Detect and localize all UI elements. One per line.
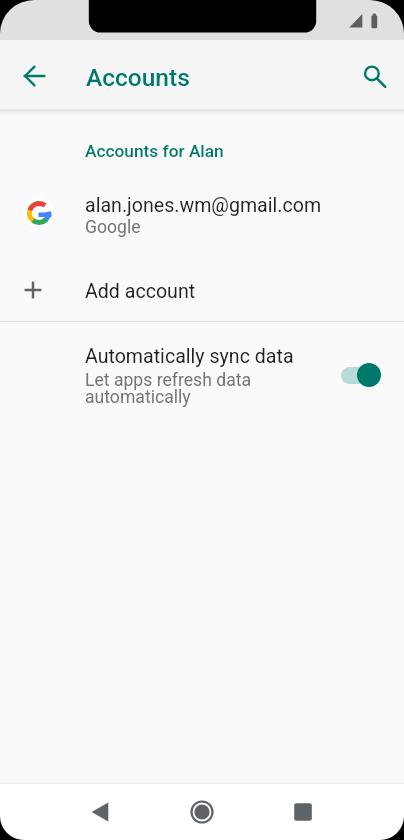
- staticText: Automatically sync data: [85, 345, 294, 368]
- button[interactable]: Navigate up: [10, 40, 58, 111]
- button[interactable]: Automatically sync data: [0, 322, 404, 418]
- button[interactable]: Home: [180, 783, 224, 840]
- staticText: Accounts for Alan: [85, 141, 224, 161]
- button[interactable]: Add account: [0, 264, 404, 321]
- button[interactable]: Search: [351, 40, 399, 111]
- staticText: Accounts: [86, 63, 190, 92]
- staticText: Let apps refresh data automatically: [85, 370, 252, 408]
- staticText: Google: [85, 217, 141, 238]
- button[interactable]: Recent apps: [281, 783, 325, 840]
- staticText: Add account: [85, 280, 196, 303]
- staticText: alan.jones.wm@gmail.com: [85, 194, 322, 217]
- button[interactable]: Back: [78, 783, 122, 840]
- button[interactable]: alan.jones.wm@gmail.com: [0, 176, 404, 248]
